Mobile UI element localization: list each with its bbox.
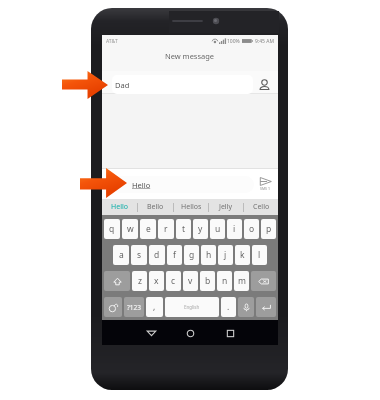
button[interactable]: c: [166, 271, 181, 291]
staticText: AT&T: [106, 38, 118, 45]
staticText: p: [266, 223, 272, 235]
button[interactable]: g: [184, 245, 199, 265]
button[interactable]: Hello: [112, 176, 254, 193]
staticText: r: [164, 223, 168, 235]
button[interactable]: Jelly: [209, 199, 243, 215]
button[interactable]: Choose contact: [257, 78, 271, 91]
button[interactable]: b: [200, 271, 215, 291]
staticText: ?123: [127, 303, 141, 312]
button[interactable]: q: [104, 219, 120, 239]
staticText: b: [205, 275, 211, 287]
staticText: m: [238, 275, 246, 287]
button[interactable]: n: [217, 271, 232, 291]
staticText: 100%: [227, 38, 240, 45]
staticText: English: [184, 304, 200, 310]
staticText: Dad: [115, 80, 130, 90]
staticText: c: [171, 275, 176, 287]
button[interactable]: Cello: [244, 199, 278, 215]
staticText: Jelly: [219, 202, 233, 212]
staticText: 9:45 AM: [255, 38, 274, 45]
button[interactable]: Dad: [112, 75, 253, 94]
staticText: .: [227, 301, 230, 313]
button[interactable]: x: [149, 271, 164, 291]
staticText: f: [173, 249, 176, 261]
staticText: Cello: [253, 202, 270, 212]
staticText: g: [189, 249, 195, 261]
button[interactable]: u: [210, 219, 225, 239]
staticText: y: [198, 223, 203, 235]
button[interactable]: f: [167, 245, 182, 265]
button[interactable]: d: [149, 245, 165, 265]
staticText: o: [249, 223, 255, 235]
staticText: w: [127, 223, 134, 235]
button[interactable]: Emoji: [104, 297, 122, 317]
staticText: z: [138, 275, 142, 287]
button[interactable]: .: [221, 297, 236, 317]
button[interactable]: h: [201, 245, 216, 265]
button[interactable]: e: [140, 219, 156, 239]
button[interactable]: p: [261, 219, 276, 239]
button[interactable]: r: [158, 219, 174, 239]
button[interactable]: Hellos: [174, 199, 208, 215]
button[interactable]: Shift: [104, 271, 130, 291]
button[interactable]: ,: [146, 297, 163, 317]
button[interactable]: Backspace: [251, 271, 276, 291]
staticText: k: [240, 249, 245, 261]
staticText: Hellos: [181, 202, 202, 212]
staticText: a: [119, 249, 124, 261]
button[interactable]: k: [235, 245, 250, 265]
button[interactable]: Enter: [256, 297, 276, 317]
staticText: e: [146, 223, 151, 235]
staticText: New message: [165, 51, 215, 61]
staticText: l: [258, 249, 261, 261]
staticText: v: [188, 275, 193, 287]
staticText: Bello: [147, 202, 164, 212]
button[interactable]: Home: [179, 322, 201, 344]
staticText: s: [137, 249, 142, 261]
staticText: x: [154, 275, 159, 287]
staticText: Hello: [111, 202, 128, 212]
button[interactable]: m: [234, 271, 249, 291]
button[interactable]: o: [244, 219, 259, 239]
staticText: t: [182, 223, 186, 235]
staticText: ,: [153, 301, 156, 313]
button[interactable]: v: [183, 271, 198, 291]
button[interactable]: Hello: [102, 199, 137, 215]
button[interactable]: y: [193, 219, 208, 239]
button[interactable]: Voice input: [238, 297, 254, 317]
button[interactable]: l: [252, 245, 267, 265]
staticText: Hello: [132, 180, 151, 190]
button[interactable]: Back: [140, 322, 162, 344]
staticText: u: [215, 223, 221, 235]
staticText: d: [154, 249, 160, 261]
staticText: i: [233, 223, 236, 235]
staticText: SMS 1: [260, 186, 270, 191]
button[interactable]: a: [113, 245, 129, 265]
button[interactable]: English: [165, 297, 219, 317]
staticText: n: [222, 275, 228, 287]
button[interactable]: w: [122, 219, 138, 239]
button[interactable]: ?123: [124, 297, 144, 317]
staticText: h: [206, 249, 212, 261]
button[interactable]: i: [227, 219, 242, 239]
button[interactable]: z: [132, 271, 147, 291]
button[interactable]: j: [218, 245, 233, 265]
button[interactable]: Bello: [138, 199, 173, 215]
button[interactable]: s: [131, 245, 147, 265]
staticText: j: [224, 249, 227, 261]
button[interactable]: Recent apps: [219, 322, 241, 344]
button[interactable]: Send message: [256, 175, 274, 194]
button[interactable]: t: [176, 219, 191, 239]
staticText: q: [109, 223, 115, 235]
